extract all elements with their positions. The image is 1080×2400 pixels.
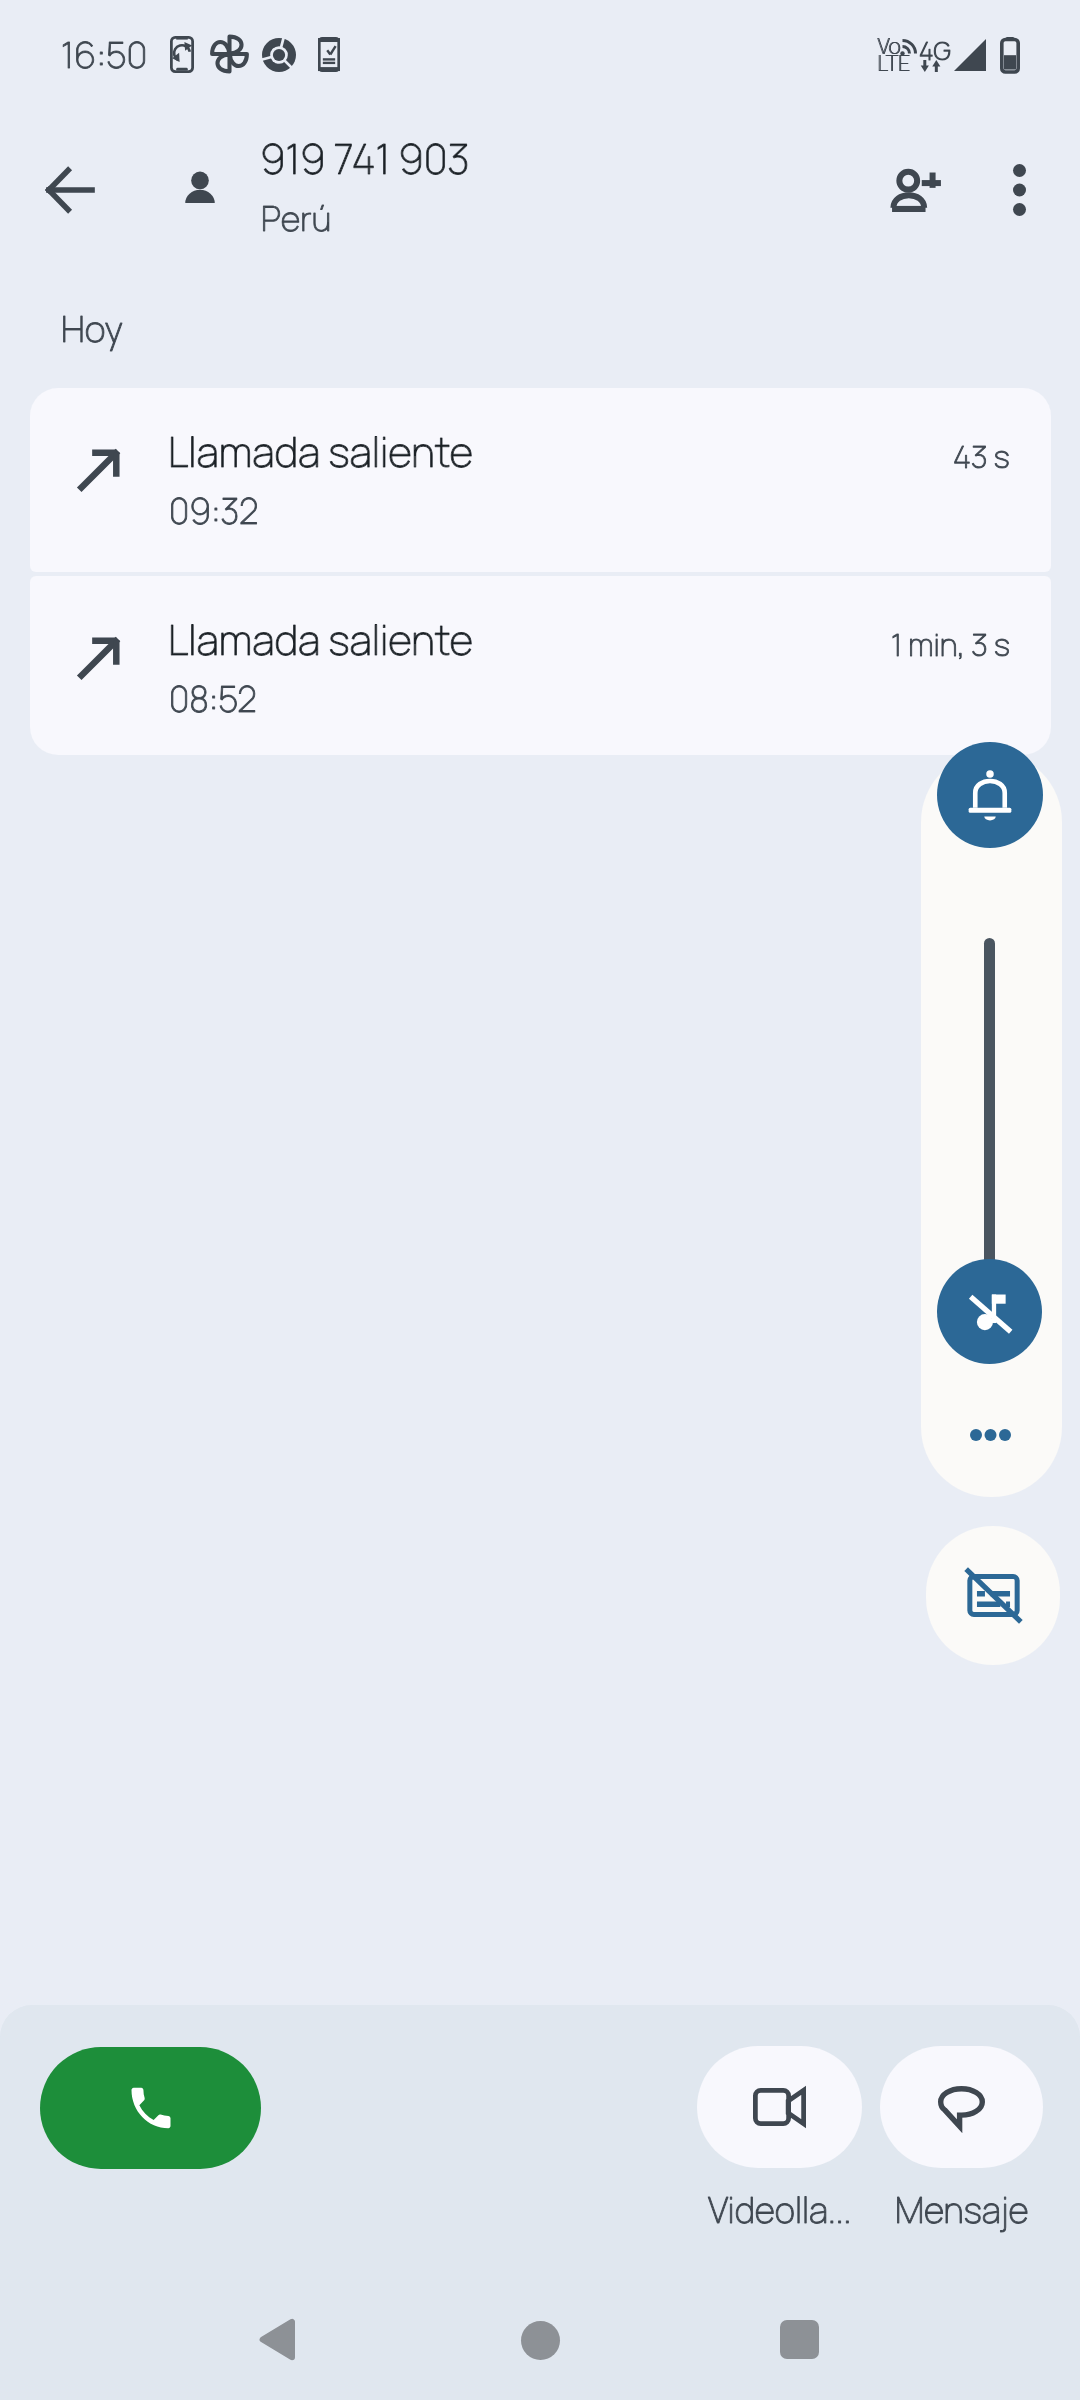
staticText: Videolla...	[708, 2186, 852, 2234]
button[interactable]: Silence ringtone	[937, 1259, 1042, 1364]
button[interactable]: Llamada saliente	[30, 388, 1051, 572]
button[interactable]: Ringer volume	[937, 742, 1043, 848]
staticText: 4G	[919, 33, 951, 67]
button[interactable]: Videolla...	[697, 2046, 862, 2234]
staticText: 16:50	[61, 30, 148, 79]
button[interactable]: Back	[26, 146, 114, 234]
staticText: Hoy	[61, 304, 123, 353]
staticText: 43 s	[953, 435, 1010, 477]
staticText: 09:32	[169, 487, 259, 535]
staticText: 09:32	[169, 487, 259, 535]
staticText: Vo	[878, 32, 901, 61]
staticText: Mensaje	[895, 2186, 1029, 2234]
staticText: Videolla...	[708, 2186, 852, 2234]
staticText: 4G	[919, 33, 951, 67]
staticText: Llamada saliente	[168, 423, 474, 479]
button[interactable]: Add contact	[871, 147, 959, 235]
button[interactable]: Llamada saliente	[30, 576, 1051, 755]
staticText: 919 741 903	[260, 130, 470, 186]
staticText: Mensaje	[895, 2186, 1029, 2234]
staticText: LTE	[878, 49, 911, 78]
staticText: Vo	[877, 32, 900, 61]
button[interactable]: Call	[40, 2047, 261, 2169]
staticText: Perú	[261, 195, 332, 241]
staticText: Llamada saliente	[168, 611, 474, 667]
staticText: Hoy	[61, 304, 123, 353]
staticText: LTE	[877, 49, 910, 78]
staticText: LTE	[878, 49, 911, 78]
staticText: Vo	[878, 32, 901, 61]
staticText: 1 min, 3 s	[891, 623, 1010, 665]
button[interactable]: More volume options	[950, 1399, 1030, 1471]
staticText: 1 min, 3 s	[891, 623, 1010, 665]
staticText: Llamada saliente	[168, 423, 474, 479]
staticText: 08:52	[169, 675, 257, 723]
staticText: 43 s	[953, 435, 1010, 477]
staticText: 919 741 903	[260, 130, 470, 186]
button[interactable]: Mensaje	[880, 2046, 1043, 2234]
staticText: 08:52	[169, 675, 257, 723]
staticText: 16:50	[61, 30, 148, 79]
button[interactable]: Turn off live caption	[926, 1526, 1060, 1665]
staticText: Perú	[261, 195, 332, 241]
button[interactable]: More options	[975, 146, 1063, 234]
staticText: Llamada saliente	[168, 611, 474, 667]
